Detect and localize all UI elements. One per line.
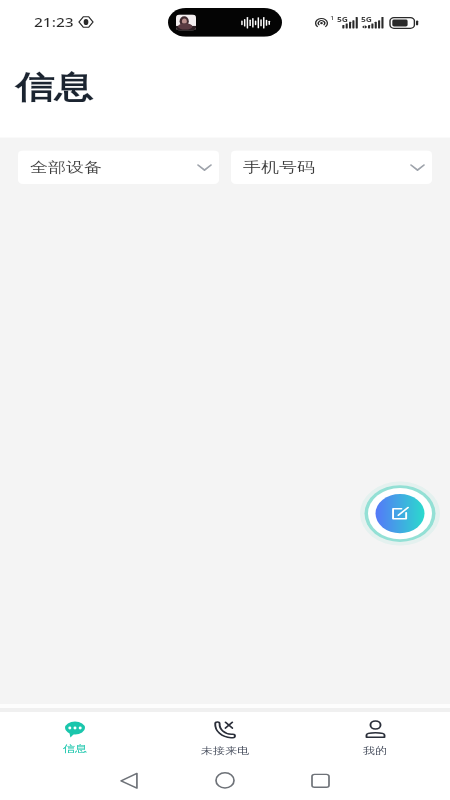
staticText: 我的 bbox=[363, 744, 387, 756]
staticText: 未接来电 bbox=[201, 744, 249, 756]
staticText: 全部设备 bbox=[30, 158, 102, 177]
staticText: 21:23 bbox=[34, 14, 74, 30]
staticText: 5G bbox=[337, 15, 349, 25]
staticText: 信息 bbox=[15, 67, 93, 106]
staticText: 1 bbox=[330, 14, 335, 22]
staticText: 手机号码 bbox=[243, 158, 315, 177]
button[interactable]: 返回 bbox=[120, 773, 138, 789]
button[interactable]: 主页 bbox=[215, 772, 235, 789]
button[interactable]: 未接来电 bbox=[150, 722, 300, 778]
staticText: 信息 bbox=[63, 742, 87, 754]
staticText: 5G bbox=[361, 15, 373, 25]
button[interactable]: 新建信息 bbox=[360, 482, 440, 546]
button[interactable]: 最近任务 bbox=[311, 774, 330, 788]
button[interactable]: 信息 bbox=[0, 722, 150, 778]
button[interactable]: 我的 bbox=[300, 722, 450, 778]
button[interactable]: 手机号码 bbox=[231, 150, 432, 184]
button[interactable]: 全部设备 bbox=[18, 150, 219, 184]
